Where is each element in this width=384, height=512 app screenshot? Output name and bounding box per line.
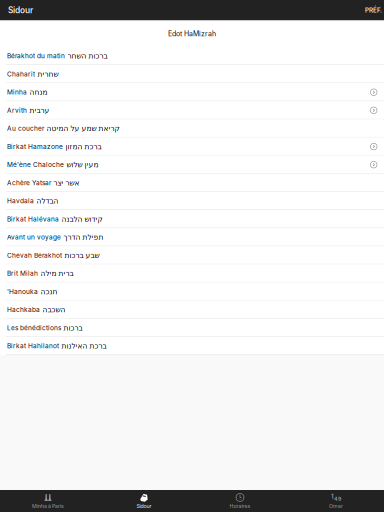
button[interactable]: Birkat Halévana [0,210,384,228]
staticText: ערבית [29,106,49,115]
button[interactable]: Birkat Hamazone [0,137,384,156]
button[interactable]: Chaharit [0,65,384,83]
button[interactable]: Plus d’informations [370,143,377,150]
staticText: שחרית [37,70,58,78]
staticText: Bérakhot du matin [7,52,65,60]
staticText: 49 [334,496,341,502]
button[interactable]: Sidour [0,0,39,20]
staticText: ברכות השחר [67,52,107,60]
staticText: PRÉF. [365,6,382,14]
staticText: ברכת המזון [65,142,101,151]
button[interactable]: Minha [0,83,384,101]
staticText [44,124,46,132]
staticText: Horaires [229,503,250,509]
button[interactable]: 'Hanouka [0,282,384,301]
staticText: Achère Yatsar [7,179,51,187]
staticText: השכבה [42,305,65,314]
staticText: Avant un voyage [7,233,61,241]
staticText: Edot HaMizrah [168,29,216,38]
button[interactable]: Plus d’informations [370,89,377,95]
staticText: Brit Milah [7,269,38,277]
staticText: Sidour [136,503,151,509]
staticText: תפילת הדרך [63,233,103,242]
button[interactable]: Mé'ène Chaloche [0,156,384,174]
staticText: שבע ברכות [64,251,99,260]
staticText: Birkat Halévana [7,215,59,223]
button[interactable]: Achère Yatsar [0,174,384,192]
button[interactable]: Chévah Bérakhot [0,246,384,264]
button[interactable]: Avant un voyage [0,228,384,246]
staticText: Arvith [7,106,27,114]
button[interactable]: Brit Milah [0,264,384,282]
button[interactable]: Havdala [0,192,384,210]
button[interactable]: Plus d’informations [370,107,377,114]
button[interactable]: Au coucher [0,119,384,137]
staticText [35,70,37,78]
staticText: Birkat Hahilanot [7,342,59,350]
staticText: Chaharit [7,70,35,78]
staticText: Mé'ène Chaloche [7,161,64,169]
staticText: הבדלה [36,197,58,205]
staticText: ברית מילה [40,269,73,278]
button[interactable]: Hachkaba [0,301,384,319]
button[interactable]: Arvith [0,101,384,119]
staticText: Au coucher [7,124,44,132]
button[interactable]: 1 [288,490,384,512]
staticText: Minha à Paris [32,503,64,509]
staticText: 1 [331,493,334,500]
staticText: ברכת האילנות [61,342,106,350]
staticText: קידוש הלבנה [61,215,102,223]
staticText: ברכות [63,323,82,332]
staticText: Birkat Hamazone [7,143,63,150]
staticText: Sidour [8,5,33,15]
staticText [59,342,61,350]
button[interactable]: Les bénédictions [0,319,384,337]
staticText: 'Hanouka [7,288,38,295]
staticText: מנחה [29,88,47,97]
staticText: Omer [329,503,343,509]
staticText: Hachkaba [7,306,40,314]
button[interactable]: Sidour [96,490,192,512]
staticText: קריאת שמע על המיטה [46,124,119,133]
staticText: אשר יצר [53,178,79,187]
staticText [62,251,64,259]
staticText: חנכה [40,287,57,296]
staticText [61,324,63,332]
staticText: Les bénédictions [7,324,61,332]
staticText: מעין שלוש [66,160,98,169]
button[interactable]: Bérakhot du matin [0,47,384,65]
staticText [51,179,53,187]
staticText: Havdala [7,197,34,205]
staticText: Minha [7,88,27,96]
button[interactable]: PRÉF. [359,0,384,20]
button[interactable]: Minha à Paris [0,490,96,512]
button[interactable]: Plus d’informations [370,161,377,168]
button[interactable]: Birkat Hahilanot [0,337,384,355]
button[interactable]: Horaires [192,490,288,512]
staticText: Chévah Bérakhot [7,251,62,259]
